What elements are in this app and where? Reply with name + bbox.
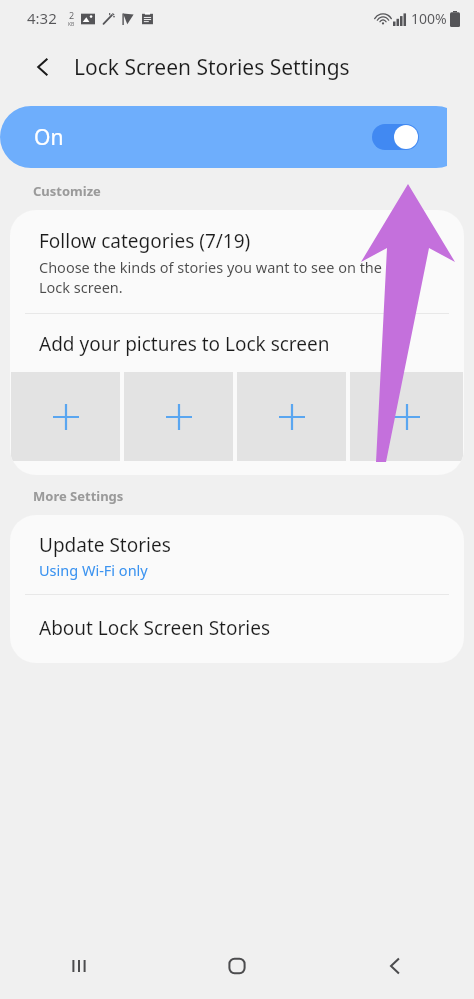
button[interactable]: Add picture <box>237 372 346 461</box>
button[interactable]: Back <box>26 50 60 84</box>
staticText: On <box>34 123 64 152</box>
button[interactable]: About Lock Screen Stories <box>10 595 464 663</box>
staticText: More Settings <box>33 487 124 505</box>
staticText: Follow categories (7/19) <box>39 228 251 254</box>
button[interactable]: Add picture <box>11 372 120 461</box>
staticText: KB <box>68 21 75 28</box>
staticText: Update Stories <box>39 532 171 558</box>
staticText: About Lock Screen Stories <box>39 615 271 641</box>
staticText: Choose the kinds of stories you want to … <box>39 257 383 297</box>
staticText: 2 <box>69 9 75 21</box>
staticText: Customize <box>33 182 101 200</box>
staticText: 100% <box>411 9 447 28</box>
button[interactable]: Add picture <box>350 372 463 461</box>
button[interactable]: Add your pictures to Lock screen <box>10 314 464 372</box>
button[interactable]: Add picture <box>124 372 233 461</box>
button[interactable]: Follow categories (7/19) <box>10 210 464 313</box>
staticText: Lock Screen Stories Settings <box>74 53 350 82</box>
staticText: Using Wi-Fi only <box>39 560 148 580</box>
button[interactable]: Recent apps <box>0 933 158 999</box>
button[interactable]: Update Stories <box>10 515 464 594</box>
staticText: Add your pictures to Lock screen <box>39 331 330 357</box>
button[interactable]: On <box>0 106 447 168</box>
button[interactable]: Back <box>316 933 474 999</box>
staticText: 4:32 <box>27 8 57 28</box>
button[interactable]: Home <box>158 933 316 999</box>
